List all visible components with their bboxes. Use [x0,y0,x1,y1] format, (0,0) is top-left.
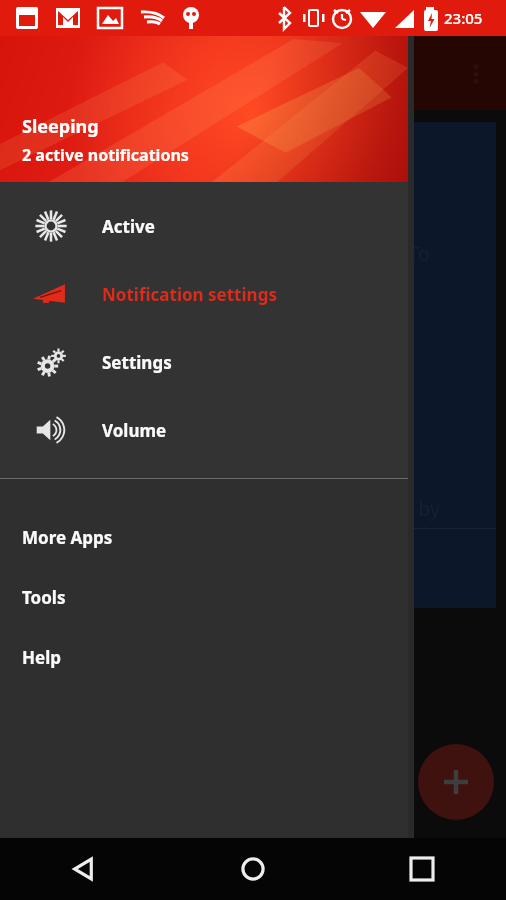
button[interactable]: Active [0,192,408,260]
button[interactable]: Back [0,838,168,900]
button[interactable]: Volume [0,396,408,464]
staticText: 2 active notifications [22,144,189,166]
button[interactable]: Notification settings [0,260,408,328]
staticText: Help [22,646,61,669]
button[interactable]: To [300,122,496,608]
staticText: 23:05 [444,8,483,28]
staticText: Notification settings [102,283,277,306]
button[interactable]: Tools [0,567,408,627]
staticText: Active [102,215,155,238]
staticText: Settings [102,351,172,374]
staticText: To [408,240,430,267]
staticText: Sleeping [22,114,99,139]
button[interactable]: Help [0,627,408,687]
staticText: Volume [102,419,167,442]
staticText: t v by [404,470,440,522]
button[interactable]: Home [168,838,337,900]
button[interactable]: Settings [0,328,408,396]
staticText: More Apps [22,526,113,549]
staticText: Tools [22,586,66,609]
button[interactable]: Recents [337,838,506,900]
button[interactable]: More Apps [0,507,408,567]
button[interactable]: Add [418,744,494,820]
